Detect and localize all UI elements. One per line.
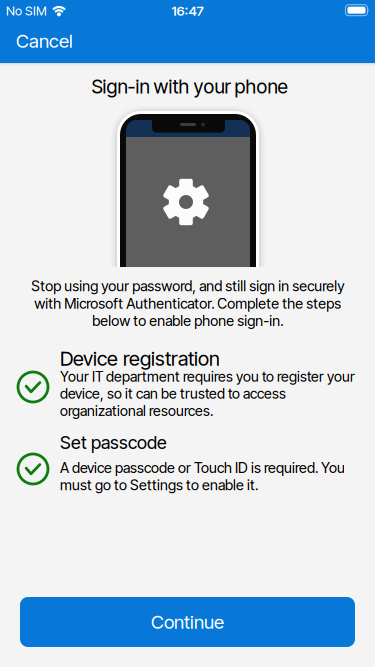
- staticText: Device registration: [60, 346, 220, 370]
- staticText: 16:47: [171, 3, 203, 19]
- button[interactable]: Cancel: [16, 20, 96, 62]
- staticText: Continue: [151, 611, 224, 633]
- staticText: No SIM: [6, 3, 47, 19]
- staticText: Set passcode: [60, 432, 167, 453]
- staticText: Sign-in with your phone: [91, 75, 287, 98]
- staticText: A device passcode or Touch ID is require…: [60, 459, 345, 494]
- staticText: Stop using your password, and still sign…: [31, 277, 344, 329]
- staticText: Cancel: [16, 30, 73, 52]
- button[interactable]: Continue: [20, 597, 355, 647]
- staticText: Your IT department requires you to regis…: [60, 368, 355, 419]
